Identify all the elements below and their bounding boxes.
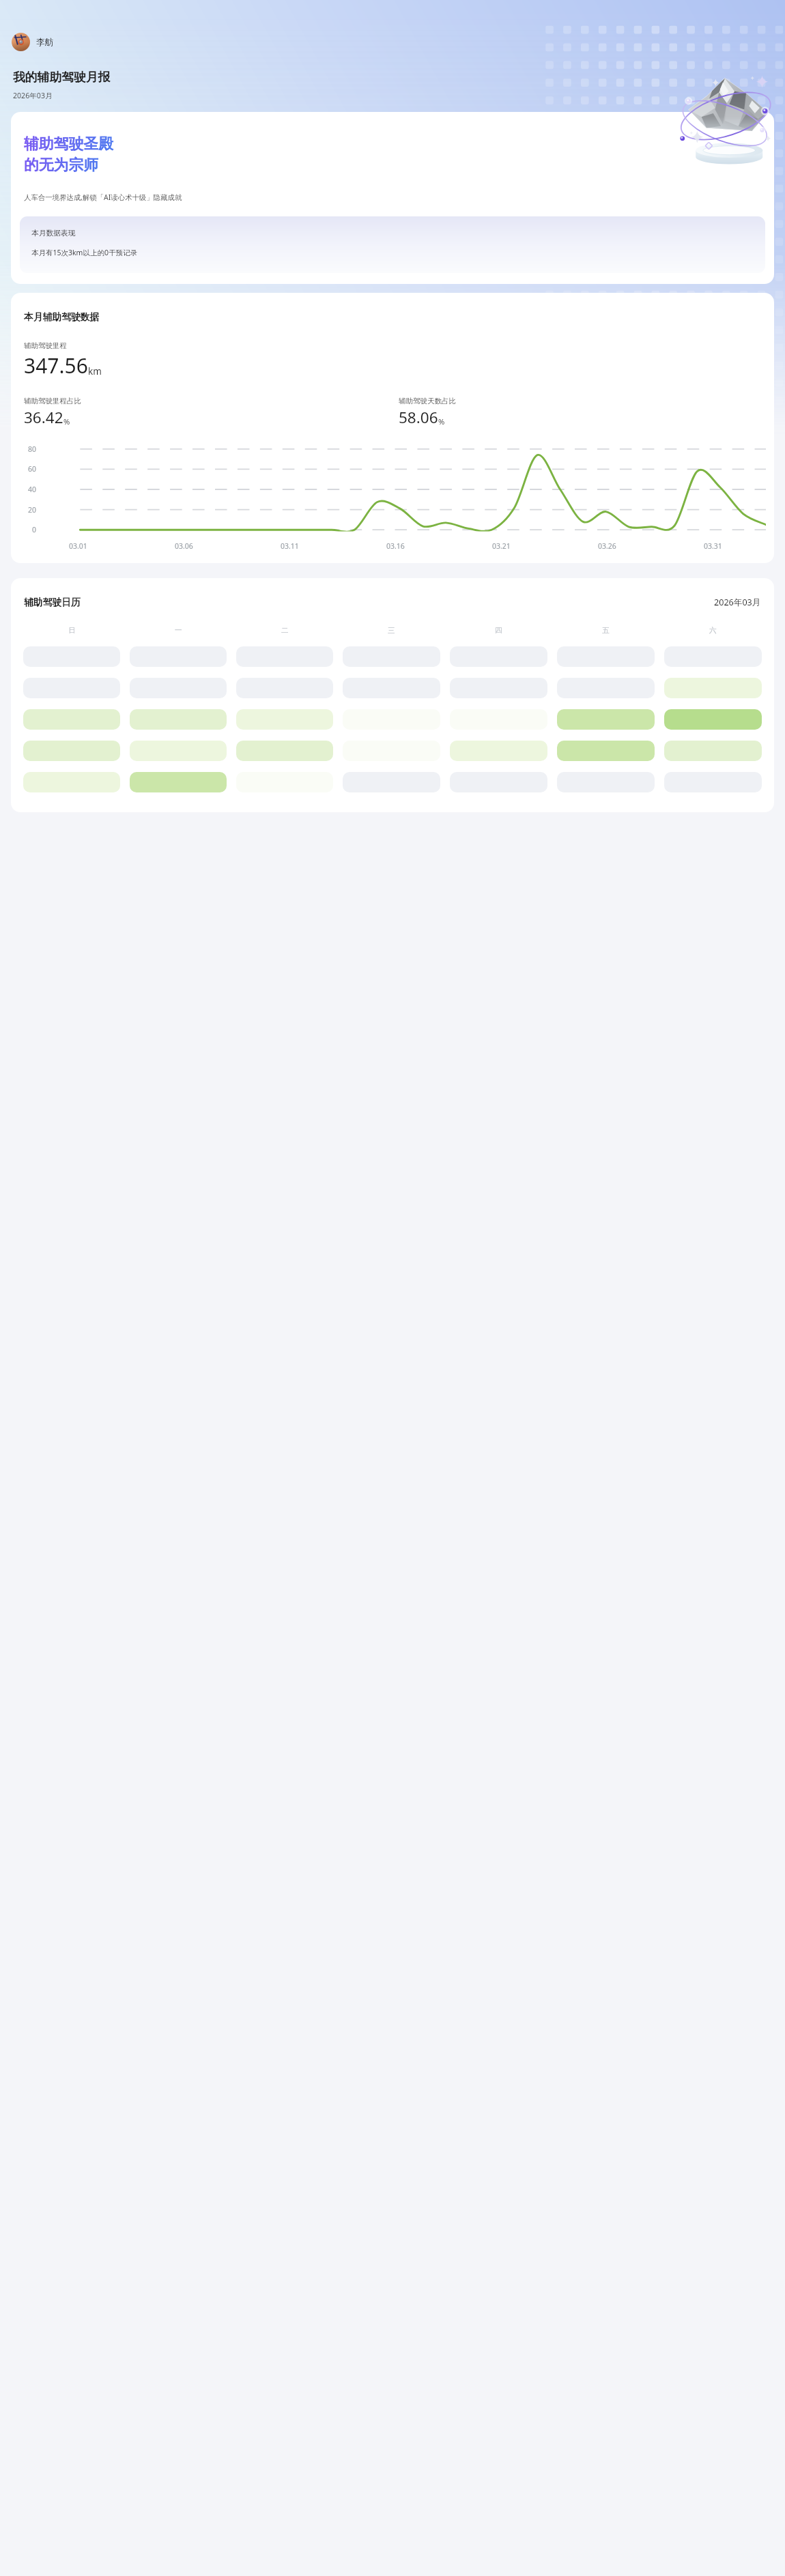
button[interactable] — [130, 646, 227, 667]
staticText: 03.21 — [492, 541, 511, 551]
staticText: 辅助驾驶日历 — [24, 597, 81, 608]
staticText: 一 — [175, 626, 182, 635]
staticText: 40 — [28, 485, 37, 494]
staticText: 03.11 — [281, 541, 299, 551]
staticText: % — [63, 416, 70, 427]
button[interactable] — [664, 678, 762, 698]
staticText: 03.16 — [386, 541, 405, 551]
staticText: 03.31 — [704, 541, 722, 551]
staticText: 03.06 — [175, 541, 193, 551]
staticText: 辅助驾驶天数占比 — [399, 397, 456, 405]
staticText: 二 — [281, 626, 289, 635]
button[interactable]: 本月数据表现 — [20, 216, 765, 273]
staticText: 0 — [32, 525, 37, 534]
other: Achievement trophy — [674, 73, 771, 164]
staticText: 辅助驾驶圣殿 — [24, 134, 113, 153]
staticText: 2026年03月 — [13, 91, 53, 100]
button[interactable] — [450, 646, 547, 667]
staticText: 03.26 — [598, 541, 616, 551]
staticText: % — [438, 416, 445, 427]
staticText: 四 — [495, 626, 502, 635]
staticText: 2026年03月 — [714, 597, 761, 608]
button[interactable]: 李舫 — [12, 31, 61, 53]
staticText: 本月有15次3km以上的0干预记录 — [31, 248, 137, 257]
staticText: 六 — [709, 626, 717, 635]
staticText: 的无为宗师 — [24, 156, 98, 174]
staticText: 60 — [28, 464, 37, 474]
staticText: 03.01 — [69, 541, 87, 551]
staticText: 三 — [388, 626, 395, 635]
button[interactable] — [664, 709, 762, 730]
button[interactable] — [130, 772, 227, 792]
button[interactable] — [450, 741, 547, 761]
staticText: 36.42 — [24, 407, 63, 428]
button[interactable] — [236, 741, 333, 761]
staticText: 347.56 — [24, 352, 88, 380]
staticText: 日 — [68, 626, 76, 635]
staticText: 我的辅助驾驶月报 — [13, 70, 111, 85]
button[interactable] — [130, 741, 227, 761]
staticText: 李舫 — [36, 37, 54, 48]
staticText: 20 — [28, 505, 37, 515]
button[interactable] — [557, 646, 655, 667]
button[interactable] — [343, 646, 440, 667]
staticText: 人车合一境界达成,解锁「AI读心术十级」隐藏成就 — [24, 192, 182, 202]
staticText: 本月辅助驾驶数据 — [24, 311, 100, 323]
button[interactable] — [23, 741, 120, 761]
staticText: 辅助驾驶里程 — [24, 341, 67, 350]
button[interactable] — [23, 646, 120, 667]
staticText: 五 — [602, 626, 610, 635]
staticText: 辅助驾驶里程占比 — [24, 397, 81, 405]
button[interactable] — [664, 741, 762, 761]
button[interactable] — [557, 709, 655, 730]
button[interactable]: 本月辅助驾驶数据 — [11, 293, 774, 563]
staticText: 本月数据表现 — [31, 229, 76, 238]
button[interactable] — [236, 646, 333, 667]
button[interactable] — [557, 741, 655, 761]
staticText: 80 — [28, 444, 37, 454]
staticText: km — [88, 365, 102, 377]
staticText: 58.06 — [399, 407, 438, 428]
button[interactable] — [23, 772, 120, 792]
button[interactable]: 辅助驾驶日历 — [11, 578, 774, 812]
button[interactable] — [664, 646, 762, 667]
button[interactable] — [23, 709, 120, 730]
button[interactable]: 辅助驾驶圣殿 — [11, 112, 774, 284]
button[interactable] — [130, 709, 227, 730]
button[interactable] — [236, 709, 333, 730]
